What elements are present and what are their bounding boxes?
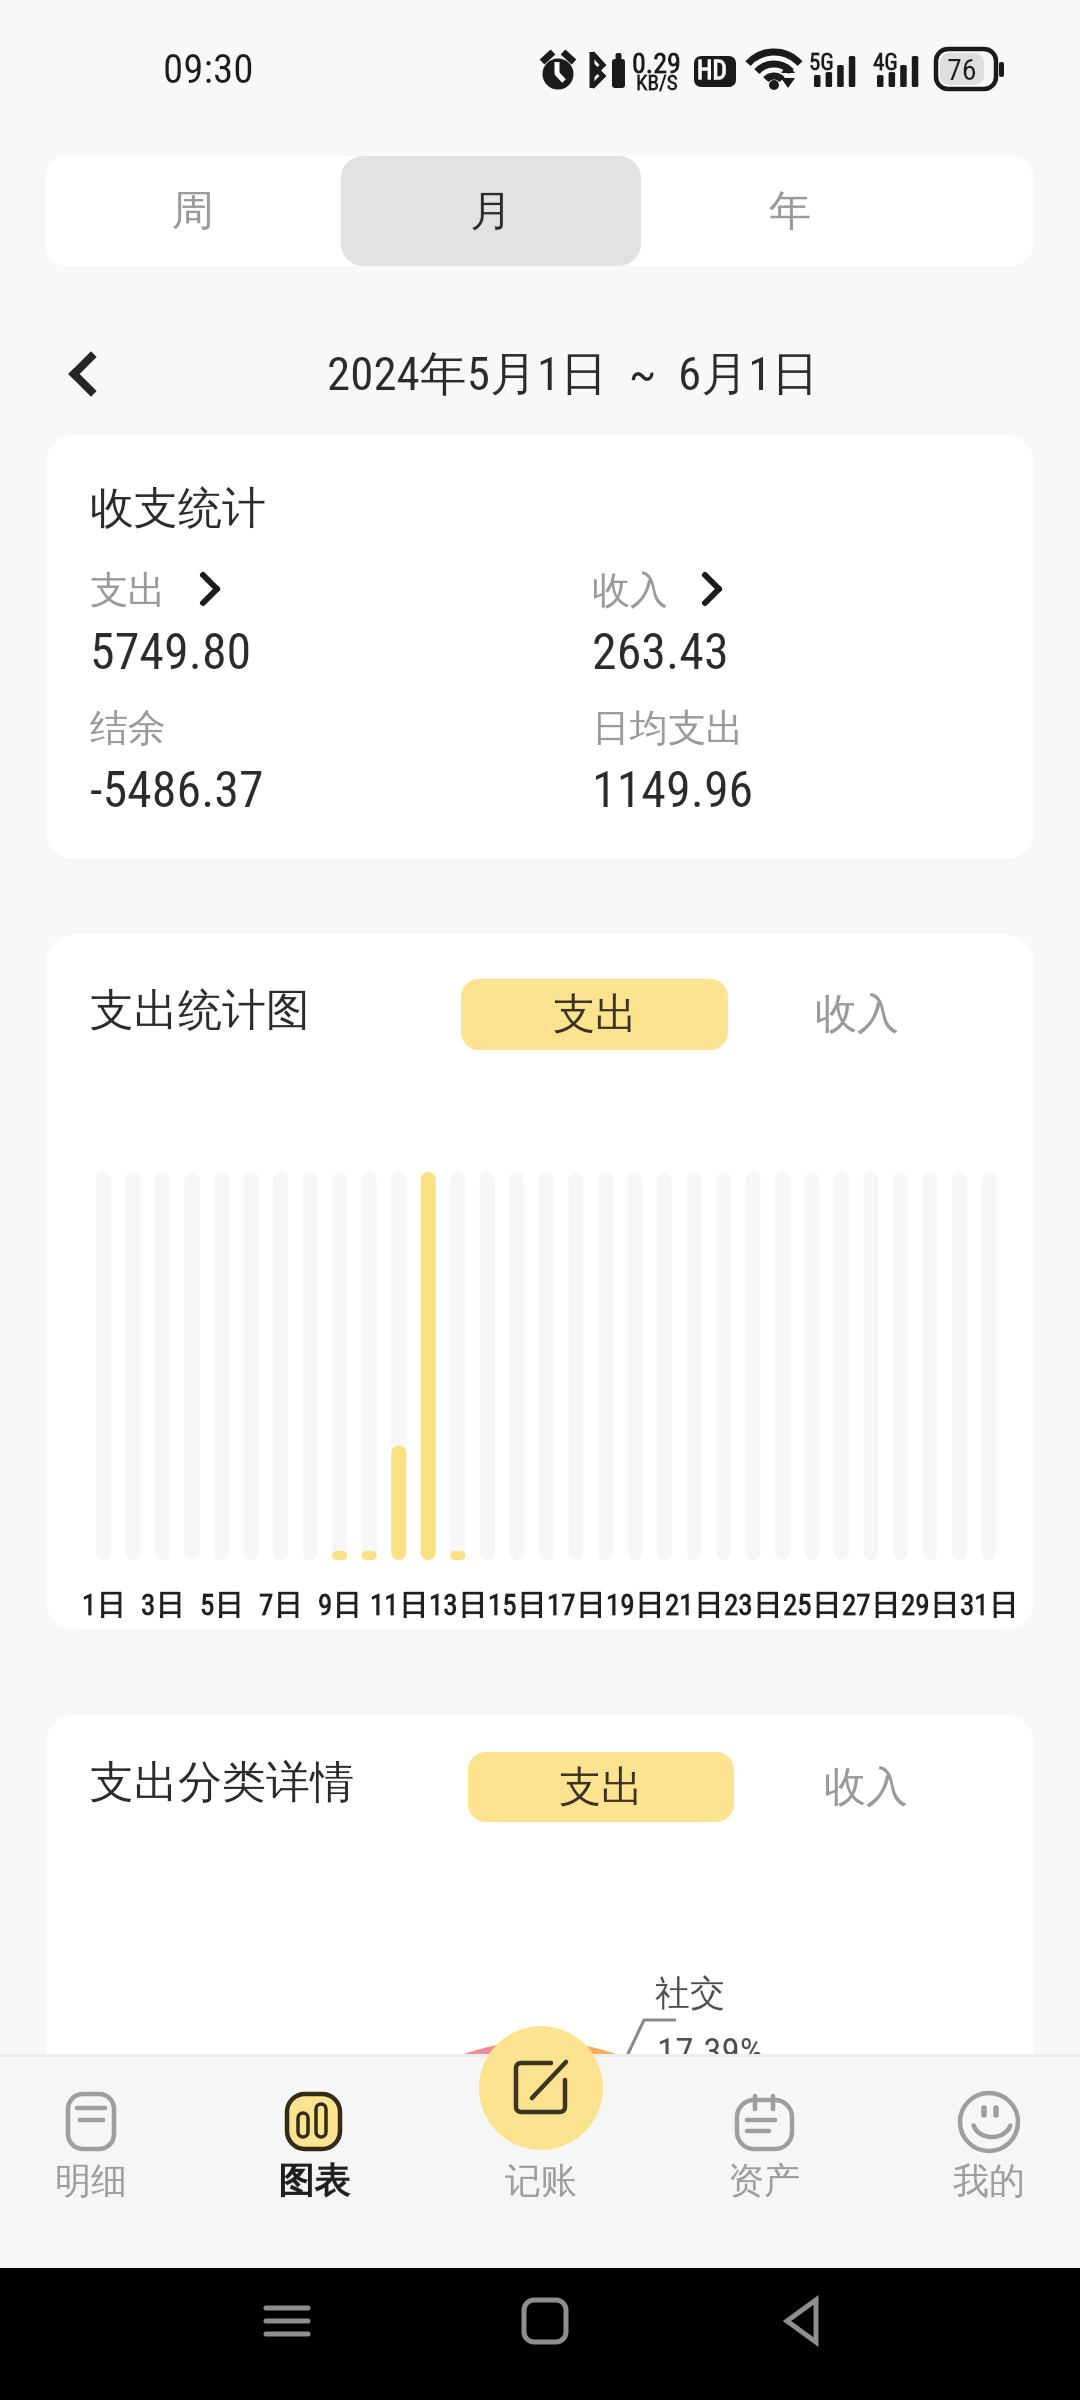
staticText: 21日 (665, 1587, 723, 1624)
staticText: 收入 (824, 1761, 908, 1814)
button[interactable]: 收入 (592, 566, 1032, 696)
staticText: 1日 (82, 1587, 126, 1624)
staticText: 19日 (606, 1587, 664, 1624)
button[interactable]: 收入 (752, 979, 962, 1050)
staticText: -5486.37 (90, 761, 264, 820)
staticText: 1149.96 (592, 761, 754, 820)
staticText: HD (697, 56, 727, 85)
staticText: 5G (809, 49, 834, 76)
staticText: 5749.80 (90, 623, 252, 682)
button[interactable]: 记账 Add record (479, 2026, 603, 2150)
staticText: 年 (769, 185, 811, 238)
staticText: 周 (172, 185, 214, 238)
staticText: 图表 (278, 2158, 350, 2203)
button[interactable]: 我的 (881, 2057, 1080, 2268)
staticText: 76 (947, 52, 977, 87)
staticText: 收入 (815, 988, 899, 1041)
staticText: 27日 (842, 1587, 900, 1624)
button[interactable]: 支出 (461, 979, 728, 1050)
staticText: 31日 (960, 1587, 1018, 1624)
button[interactable]: 收入 (760, 1752, 972, 1822)
staticText: 17.39% (657, 2030, 764, 2073)
staticText: 0.29 (632, 47, 681, 80)
staticText: 资产 (728, 2158, 800, 2203)
staticText: 3日 (141, 1587, 185, 1624)
staticText: 23日 (724, 1587, 782, 1624)
button[interactable]: 图表 (206, 2057, 422, 2268)
staticText: 25日 (783, 1587, 841, 1624)
button[interactable]: 周 (45, 156, 341, 266)
staticText: 月 (470, 185, 512, 238)
button[interactable]: 日均支出 (592, 704, 1032, 834)
button[interactable]: 资产 (656, 2057, 872, 2268)
staticText: 日均支出 (592, 704, 744, 752)
staticText: 记账 (505, 2158, 577, 2203)
staticText: 29日 (901, 1587, 959, 1624)
staticText: 9日 (318, 1587, 362, 1624)
staticText: 15日 (488, 1587, 546, 1624)
staticText: 支出 (559, 1761, 643, 1814)
staticText: 4G (873, 49, 898, 76)
staticText: 支出 (90, 566, 166, 614)
staticText: 5日 (200, 1587, 244, 1624)
staticText: 明细 (55, 2158, 127, 2203)
staticText: 结余 (90, 704, 166, 752)
button[interactable]: 明细 (0, 2057, 199, 2268)
button[interactable]: 记账 (433, 2057, 649, 2268)
staticText: 支出统计图 (90, 983, 310, 1038)
staticText: 17日 (547, 1587, 605, 1624)
staticText: 11日 (370, 1587, 428, 1624)
button[interactable]: 支出 (468, 1752, 734, 1822)
button[interactable]: Back (32, 320, 132, 428)
staticText: 2024年5月1日 ~ 6月1日 (327, 345, 819, 404)
staticText: 我的 (953, 2158, 1025, 2203)
staticText: 13日 (429, 1587, 487, 1624)
staticText: 收支统计 (90, 481, 266, 536)
staticText: 社交 (655, 1971, 725, 2015)
staticText: 支出 (553, 988, 637, 1041)
staticText: 收入 (592, 566, 668, 614)
staticText: KB/S (636, 71, 678, 96)
button[interactable]: 结余 (90, 704, 530, 834)
button[interactable]: 年 (641, 156, 938, 266)
button[interactable]: 月 (341, 156, 641, 266)
staticText: 09:30 (163, 45, 254, 93)
staticText: 263.43 (592, 623, 729, 682)
button[interactable]: 支出 (90, 566, 530, 696)
staticText: 支出分类详情 (90, 1755, 354, 1810)
staticText: 7日 (259, 1587, 303, 1624)
